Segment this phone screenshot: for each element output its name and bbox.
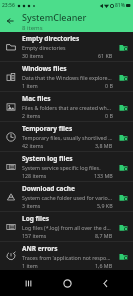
staticText: Empty directories	[22, 44, 66, 51]
staticText: 5,9 KB	[97, 202, 113, 209]
staticText: Mac files	[22, 94, 51, 103]
staticText: Log files (*.log) from all over the devi…	[22, 224, 113, 231]
staticText: 81%	[115, 2, 125, 9]
staticText: 3 items	[22, 202, 41, 209]
staticText: 2 items	[22, 112, 41, 119]
staticText: 23:56	[2, 2, 15, 9]
staticText: 133 MB	[94, 172, 113, 179]
button[interactable]: Recent apps	[18, 273, 38, 293]
button[interactable]: ANR errors	[0, 242, 133, 270]
button[interactable]: Back	[95, 273, 115, 293]
staticText: 1 item	[22, 82, 38, 89]
staticText: System service specific log files.	[22, 164, 101, 171]
staticText: 0 B	[105, 82, 113, 89]
staticText: Traces from 'application not responding'…	[22, 254, 113, 261]
staticText: SystemCleaner	[22, 11, 87, 23]
button[interactable]: Mac files	[0, 92, 133, 121]
staticText: Log files	[22, 214, 50, 223]
button[interactable]: Delete ANR errors	[116, 249, 130, 263]
button[interactable]: Home	[57, 273, 77, 293]
staticText: Download cache	[22, 184, 75, 193]
staticText: Temporary files, usually shortlived cach…	[22, 134, 113, 141]
button[interactable]: Delete Temporary files	[116, 130, 130, 144]
button[interactable]: Delete System log files	[116, 160, 130, 174]
button[interactable]: Windows files	[0, 62, 133, 91]
staticText: 128 items	[22, 172, 47, 179]
staticText: Files & folders that are created when br…	[22, 104, 113, 111]
staticText: 0 B	[105, 112, 113, 119]
button[interactable]: Log files	[0, 212, 133, 241]
button[interactable]: Temporary files	[0, 122, 133, 151]
staticText: Windows files	[22, 64, 67, 73]
staticText: 61 KB	[98, 52, 113, 59]
button[interactable]: Delete Mac files	[116, 100, 130, 114]
button[interactable]: Delete Download cache	[116, 190, 130, 204]
button[interactable]: Download cache	[0, 182, 133, 211]
staticText: Empty directories	[22, 34, 80, 43]
staticText: 8,7 MB	[95, 232, 113, 239]
staticText: 42 items	[22, 142, 44, 149]
staticText: Data that the Windows file explorer can …	[22, 74, 113, 81]
button[interactable]: Delete Empty directories	[116, 40, 130, 54]
staticText: 1 item	[22, 262, 38, 269]
staticText: System cache folder used for various thi…	[22, 194, 113, 201]
staticText: 30 items	[22, 52, 44, 59]
staticText: Temporary files	[22, 124, 73, 133]
button[interactable]: Empty directories	[0, 32, 133, 61]
button[interactable]: System log files	[0, 152, 133, 181]
staticText: 8 items	[22, 24, 43, 32]
staticText: 157 items	[22, 232, 47, 239]
staticText: ANR errors	[22, 244, 58, 253]
button[interactable]: Back	[3, 14, 17, 28]
button[interactable]: Delete Log files	[116, 220, 130, 234]
staticText: System log files	[22, 154, 73, 163]
staticText: 1,6 MB	[95, 262, 113, 269]
button[interactable]: Delete Windows files	[116, 70, 130, 84]
staticText: 3,8 MB	[95, 142, 113, 149]
